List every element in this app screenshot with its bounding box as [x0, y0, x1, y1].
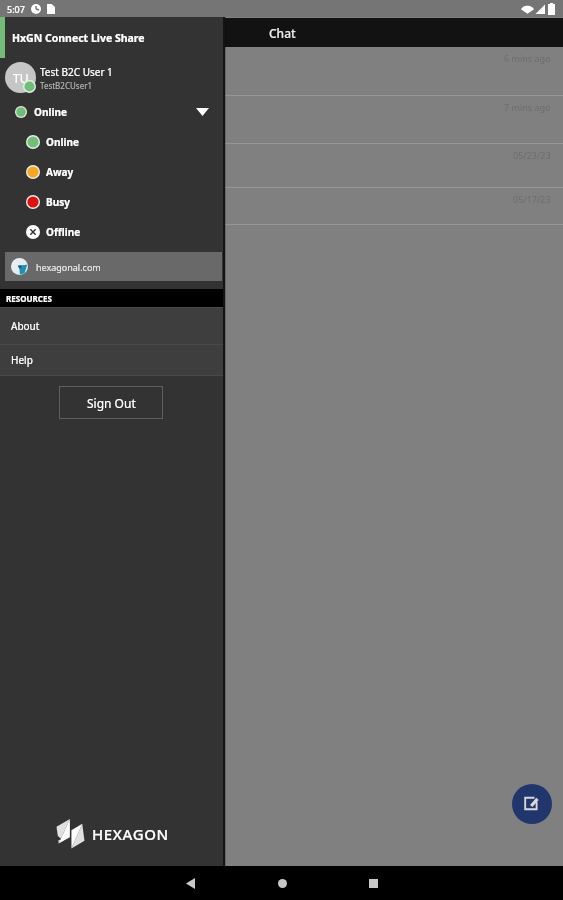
- button[interactable]: hexagonal.com: [5, 252, 222, 281]
- button[interactable]: New chat: [512, 784, 552, 824]
- staticText: Test B2C User 1: [40, 65, 113, 79]
- button[interactable]: Offline: [0, 217, 223, 247]
- button[interactable]: Home: [265, 866, 299, 900]
- button[interactable]: TU: [0, 58, 223, 97]
- staticText: 6 mins ago: [504, 52, 551, 64]
- button[interactable]: 05/23/23: [0, 144, 563, 188]
- staticText: Online: [46, 135, 79, 149]
- staticText: Chat: [269, 25, 296, 41]
- button[interactable]: Away: [0, 157, 223, 187]
- staticText: hexagonal.com: [36, 261, 101, 273]
- staticText: Away: [46, 165, 74, 179]
- staticText: 05/17/23: [513, 193, 551, 205]
- staticText: HxGN Connect Live Share: [12, 31, 145, 45]
- staticText: Help: [11, 353, 33, 367]
- staticText: Busy: [46, 195, 70, 209]
- button[interactable]: Sign Out: [59, 386, 163, 419]
- staticText: Sign Out: [87, 395, 136, 411]
- button[interactable]: Busy: [0, 187, 223, 217]
- staticText: Online: [34, 105, 67, 119]
- staticText: RESOURCES: [6, 293, 52, 304]
- button[interactable]: Help: [0, 345, 223, 375]
- staticText: About: [11, 319, 40, 333]
- staticText: TU: [13, 70, 29, 86]
- staticText: 05/23/23: [513, 149, 551, 161]
- staticText: 7 mins ago: [504, 101, 551, 113]
- staticText: HEXAGON: [92, 824, 169, 844]
- button[interactable]: Recents: [356, 866, 390, 900]
- staticText: TestB2CUser1: [40, 80, 93, 91]
- staticText: Offline: [46, 225, 81, 239]
- button[interactable]: 7 mins ago: [0, 96, 563, 144]
- button[interactable]: About: [0, 308, 223, 344]
- button[interactable]: Online: [0, 97, 223, 127]
- button[interactable]: Back: [173, 866, 207, 900]
- button[interactable]: 05/17/23: [0, 188, 563, 225]
- staticText: 5:07: [7, 3, 25, 15]
- button[interactable]: 6 mins ago: [0, 47, 563, 96]
- button[interactable]: Online: [0, 127, 223, 157]
